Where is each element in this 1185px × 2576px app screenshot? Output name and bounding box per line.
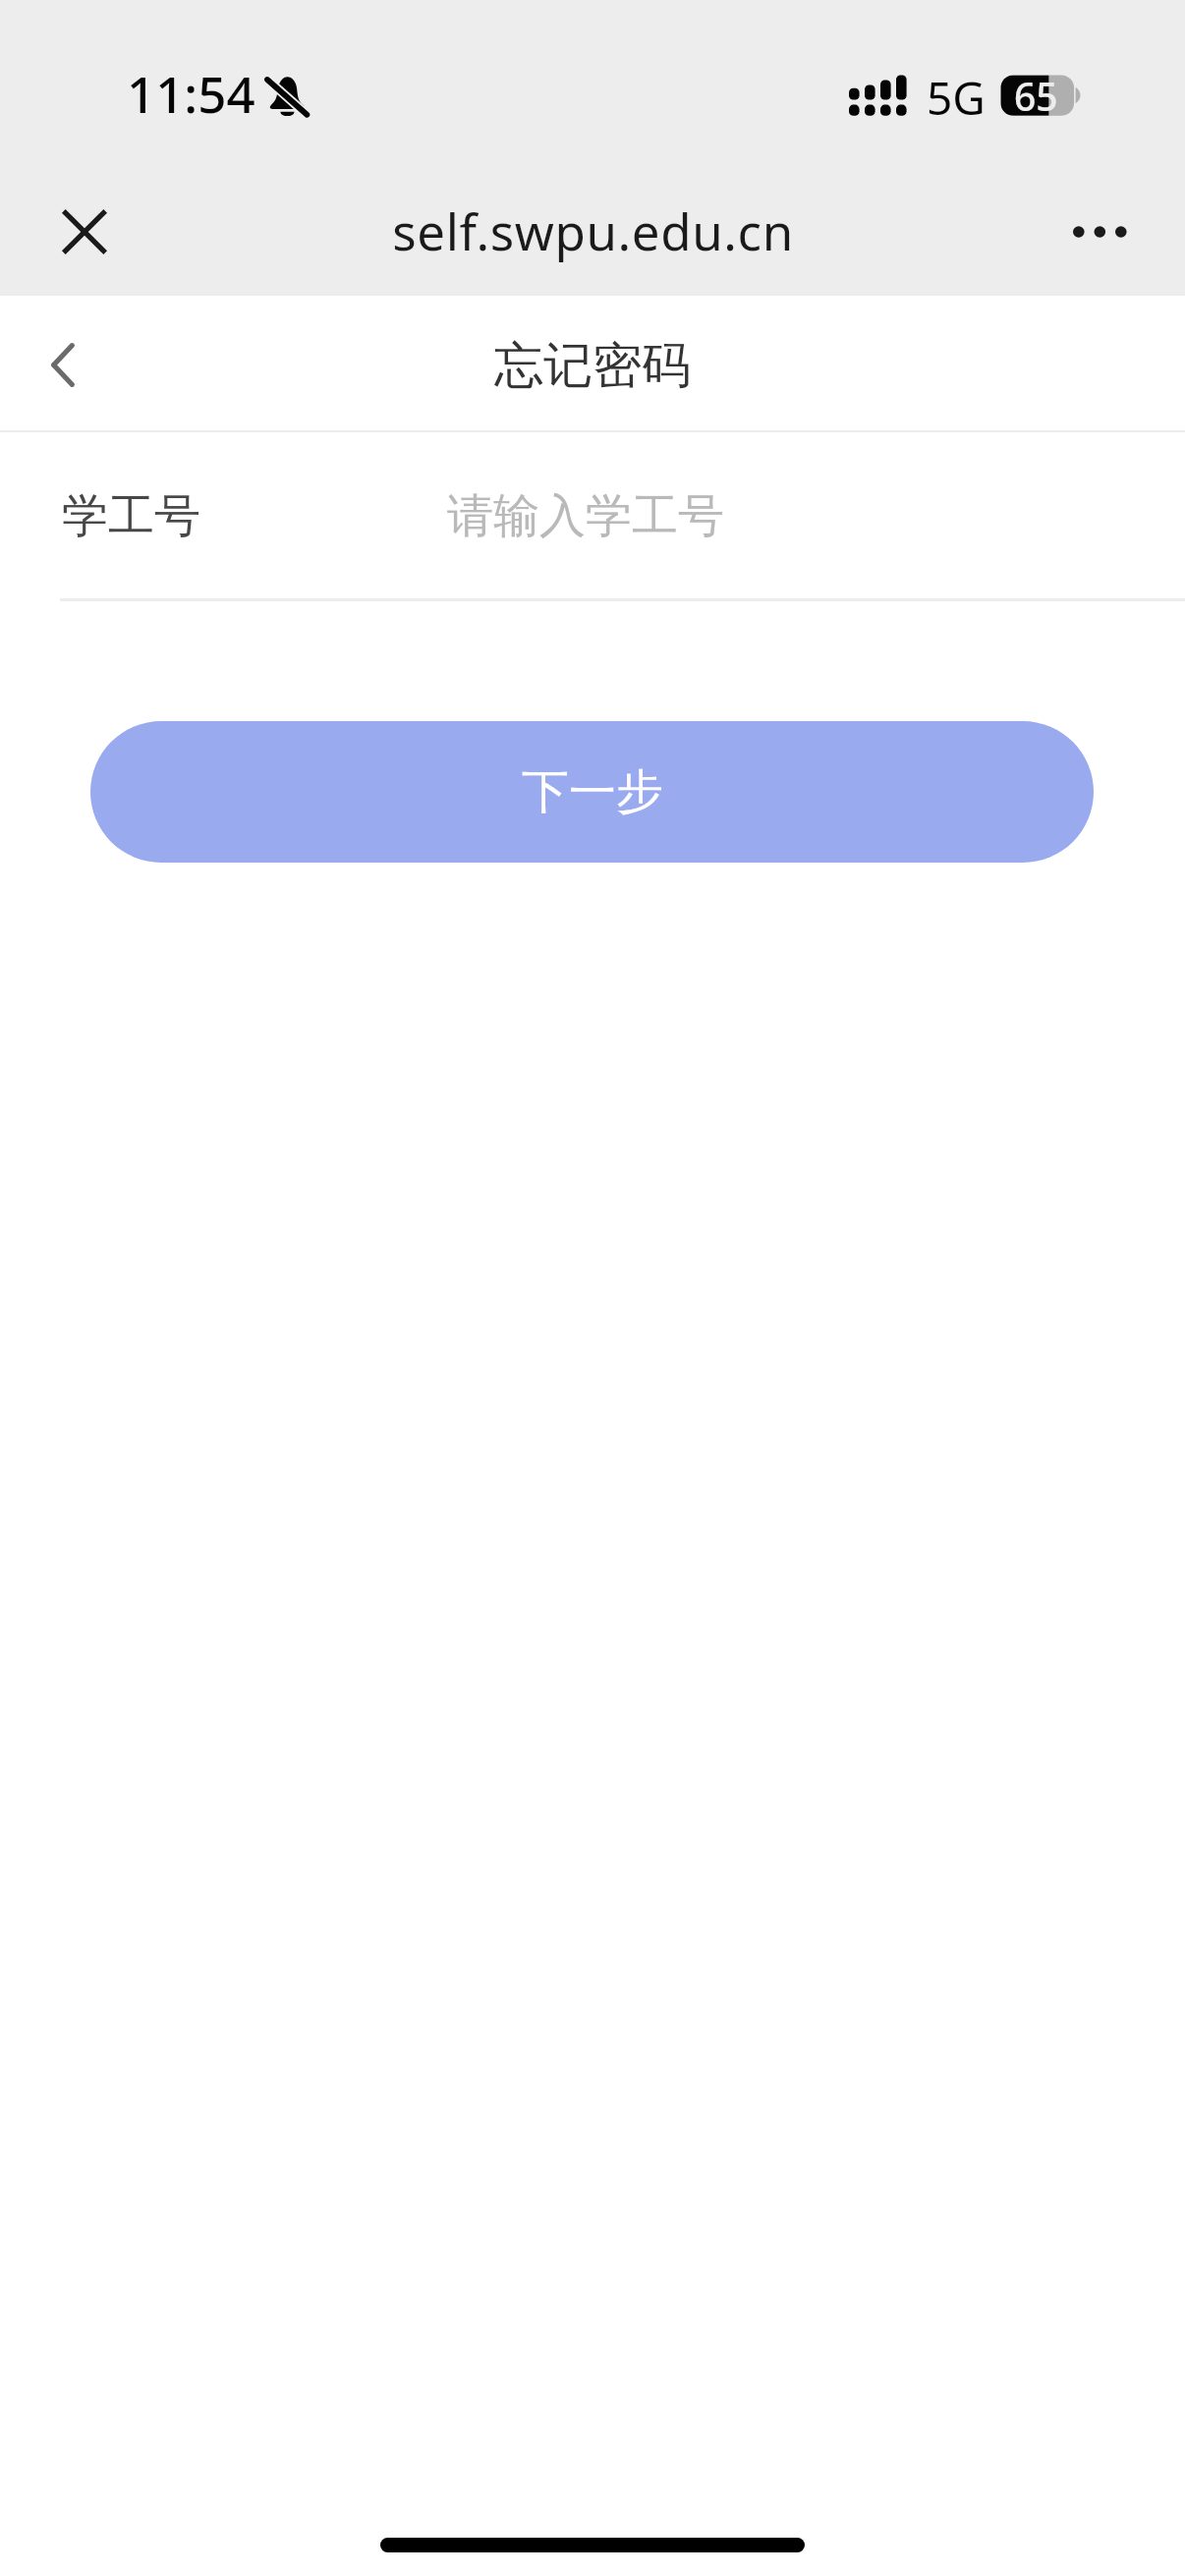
button[interactable]: 下一步 — [90, 721, 1094, 863]
staticText: 11:54 — [127, 59, 255, 127]
staticText: 请输入学工号 — [447, 487, 724, 545]
staticText: 下一步 — [522, 762, 663, 821]
button[interactable]: Close — [39, 187, 130, 277]
staticText: 学工号 — [62, 487, 200, 545]
staticText: 65 — [1014, 70, 1058, 122]
button[interactable]: 学工号 输入框 — [0, 432, 1185, 599]
staticText: 忘记密码 — [494, 335, 691, 397]
button[interactable]: More options — [1034, 187, 1124, 277]
staticText: self.swpu.edu.cn — [392, 196, 794, 264]
staticText: 5G — [927, 67, 986, 129]
button[interactable]: Back — [14, 296, 112, 430]
